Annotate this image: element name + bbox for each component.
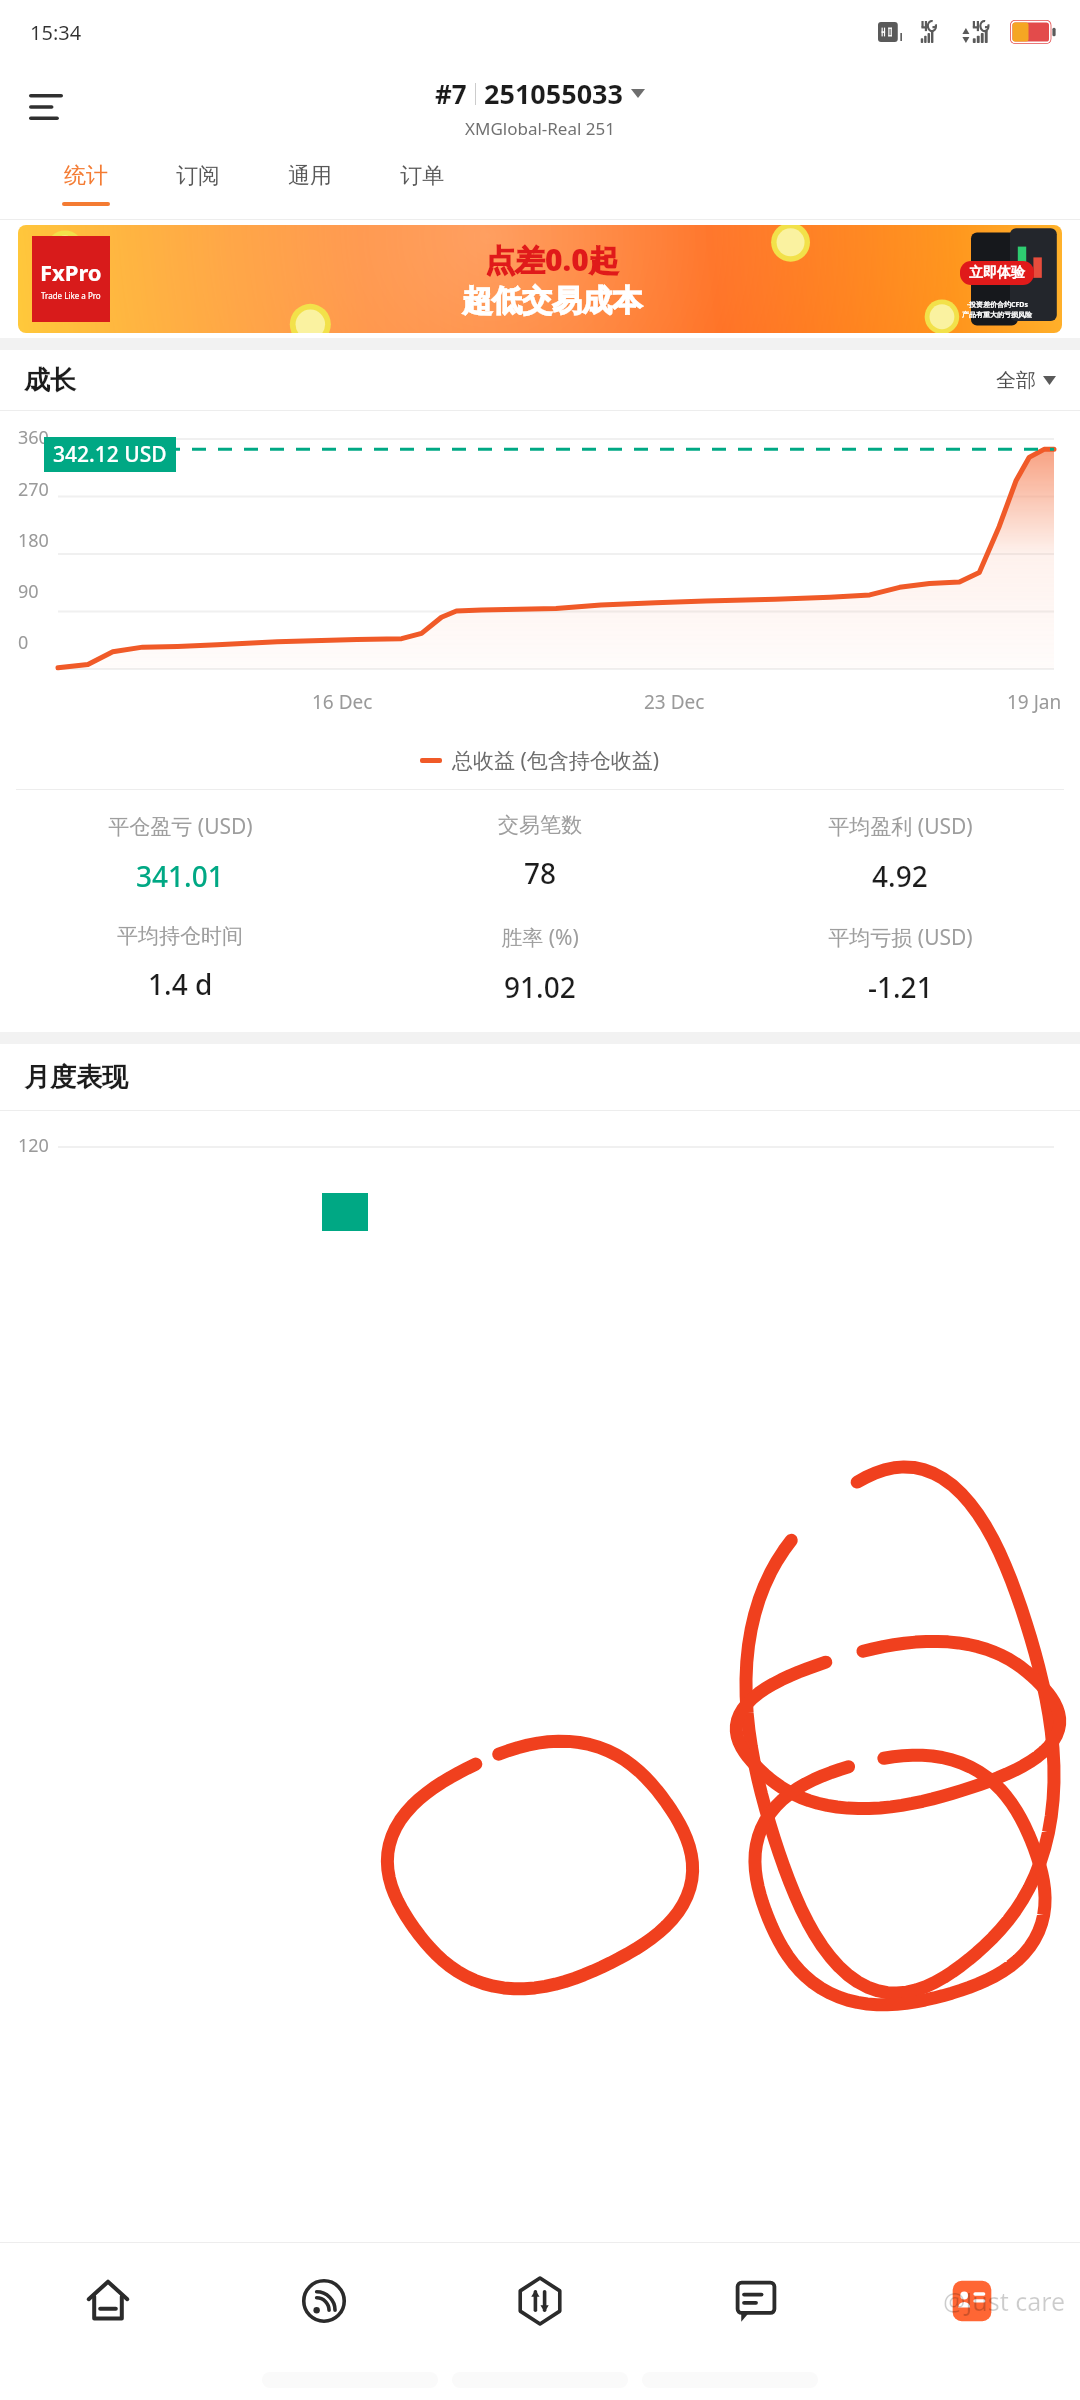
staticText: 15:34 [30, 19, 82, 46]
staticText: 23 Dec [644, 689, 705, 715]
staticText: @Just care [943, 2284, 1066, 2318]
staticText: 360 [18, 425, 49, 450]
staticText: 1.4 d [148, 965, 213, 1003]
button[interactable]: 统计 [30, 150, 142, 220]
staticText: 全部 [996, 368, 1036, 393]
staticText: 4.92 [872, 857, 928, 895]
button[interactable]: FxPro [18, 225, 1062, 333]
staticText: 120 [18, 1133, 49, 1158]
staticText: 胜率 (%) [501, 923, 579, 952]
staticText: #7 [435, 76, 467, 111]
staticText: 统计 [64, 162, 108, 190]
staticText: 交易笔数 [498, 812, 582, 838]
staticText: FxPro [40, 257, 102, 287]
button[interactable]: Profile [864, 2242, 1080, 2360]
staticText: 成长 [24, 364, 76, 397]
staticText: 平均持仓时间 [117, 923, 243, 949]
button[interactable]: 平均盈利 (USD) [720, 812, 1080, 895]
button[interactable]: Signals [216, 2242, 432, 2360]
staticText: 立即体验 [969, 264, 1025, 282]
staticText: Trade Like a Pro [41, 290, 101, 301]
staticText: 19 Jan [1007, 689, 1062, 715]
button[interactable]: 胜率 (%) [360, 923, 720, 1006]
staticText: 超低交易成本 [462, 282, 642, 320]
staticText: XMGlobal-Real 251 [465, 117, 615, 140]
staticText: 订单 [400, 162, 444, 190]
staticText: 90 [18, 579, 39, 604]
staticText: ·投资差价合约CFDs [967, 300, 1028, 310]
staticText: 产品有重大的亏损风险 [962, 310, 1032, 319]
staticText: 0 [18, 630, 29, 655]
staticText: 251055033 [484, 75, 623, 112]
staticText: 91.02 [504, 968, 576, 1006]
staticText: 342.12 USD [53, 440, 167, 469]
staticText: 平仓盈亏 (USD) [108, 812, 253, 841]
staticText: 平均亏损 (USD) [828, 923, 973, 952]
button[interactable]: #7 [435, 75, 645, 140]
button[interactable]: Messages [648, 2242, 864, 2360]
staticText: 78 [524, 854, 557, 892]
button[interactable]: Home [0, 2242, 216, 2360]
staticText: 16 Dec [312, 689, 373, 715]
button[interactable]: 订单 [366, 150, 478, 220]
button[interactable]: Menu [18, 79, 74, 135]
staticText: 平均盈利 (USD) [828, 812, 973, 841]
staticText: 180 [18, 528, 49, 553]
staticText: 341.01 [136, 857, 224, 895]
button[interactable]: Trade [432, 2242, 648, 2360]
button[interactable]: 交易笔数 [360, 812, 720, 892]
button[interactable]: 平均持仓时间 [0, 923, 360, 1003]
staticText: 通用 [288, 162, 332, 190]
button[interactable]: 全部 [996, 368, 1056, 393]
button[interactable]: 通用 [254, 150, 366, 220]
staticText: -1.21 [868, 968, 933, 1006]
staticText: 总收益 (包含持仓收益) [452, 746, 660, 775]
staticText: 月度表现 [24, 1061, 128, 1094]
staticText: 订阅 [176, 162, 220, 190]
staticText: 点差0.0起 [485, 239, 619, 280]
button[interactable]: 平仓盈亏 (USD) [0, 812, 360, 895]
button[interactable]: 平均亏损 (USD) [720, 923, 1080, 1006]
button[interactable]: 订阅 [142, 150, 254, 220]
staticText: 270 [18, 477, 49, 502]
